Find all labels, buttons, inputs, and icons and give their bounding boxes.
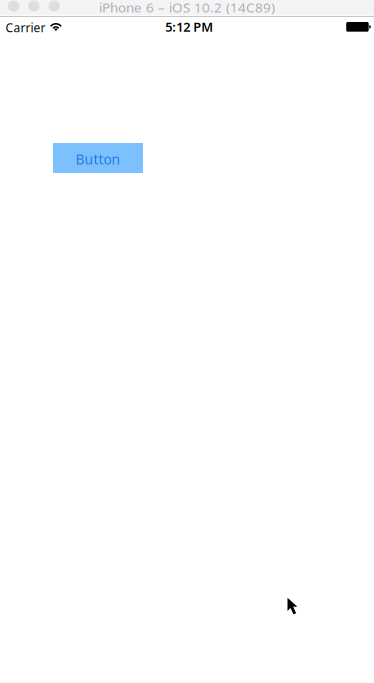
staticText: Carrier: [6, 20, 46, 36]
staticText: Button: [75, 150, 120, 169]
button[interactable]: Zoom window: [48, 0, 60, 12]
button[interactable]: Minimise window: [28, 0, 39, 12]
button[interactable]: Button: [53, 143, 143, 173]
button[interactable]: Close window: [8, 0, 19, 12]
staticText: 5:12 PM: [165, 18, 213, 35]
staticText: iPhone 6 – iOS 10.2 (14C89): [99, 0, 275, 16]
